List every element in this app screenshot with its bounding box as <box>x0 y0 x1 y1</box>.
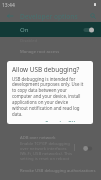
staticText: Revoke USB debugging authorizations <box>20 168 100 174</box>
staticText: 13:44 <box>2 2 15 9</box>
button[interactable]: Cancel <box>43 118 63 124</box>
staticText: Allow USB debugging? <box>12 65 80 74</box>
staticText: Manage root access <box>20 49 60 55</box>
staticText: OK <box>68 120 76 122</box>
staticText: Enable TCP/IP debugging over network int… <box>20 141 74 161</box>
button[interactable]: On <box>0 22 101 37</box>
button[interactable]: Back <box>4 10 16 22</box>
staticText: ADB over network <box>20 135 56 141</box>
staticText: Cancel <box>45 120 61 122</box>
staticText: Developer options <box>20 12 78 21</box>
staticText: USB debugging is intended for developmen… <box>12 76 84 118</box>
staticText: On <box>20 26 29 34</box>
button[interactable]: OK <box>66 118 78 124</box>
button[interactable]: Search <box>87 10 99 22</box>
